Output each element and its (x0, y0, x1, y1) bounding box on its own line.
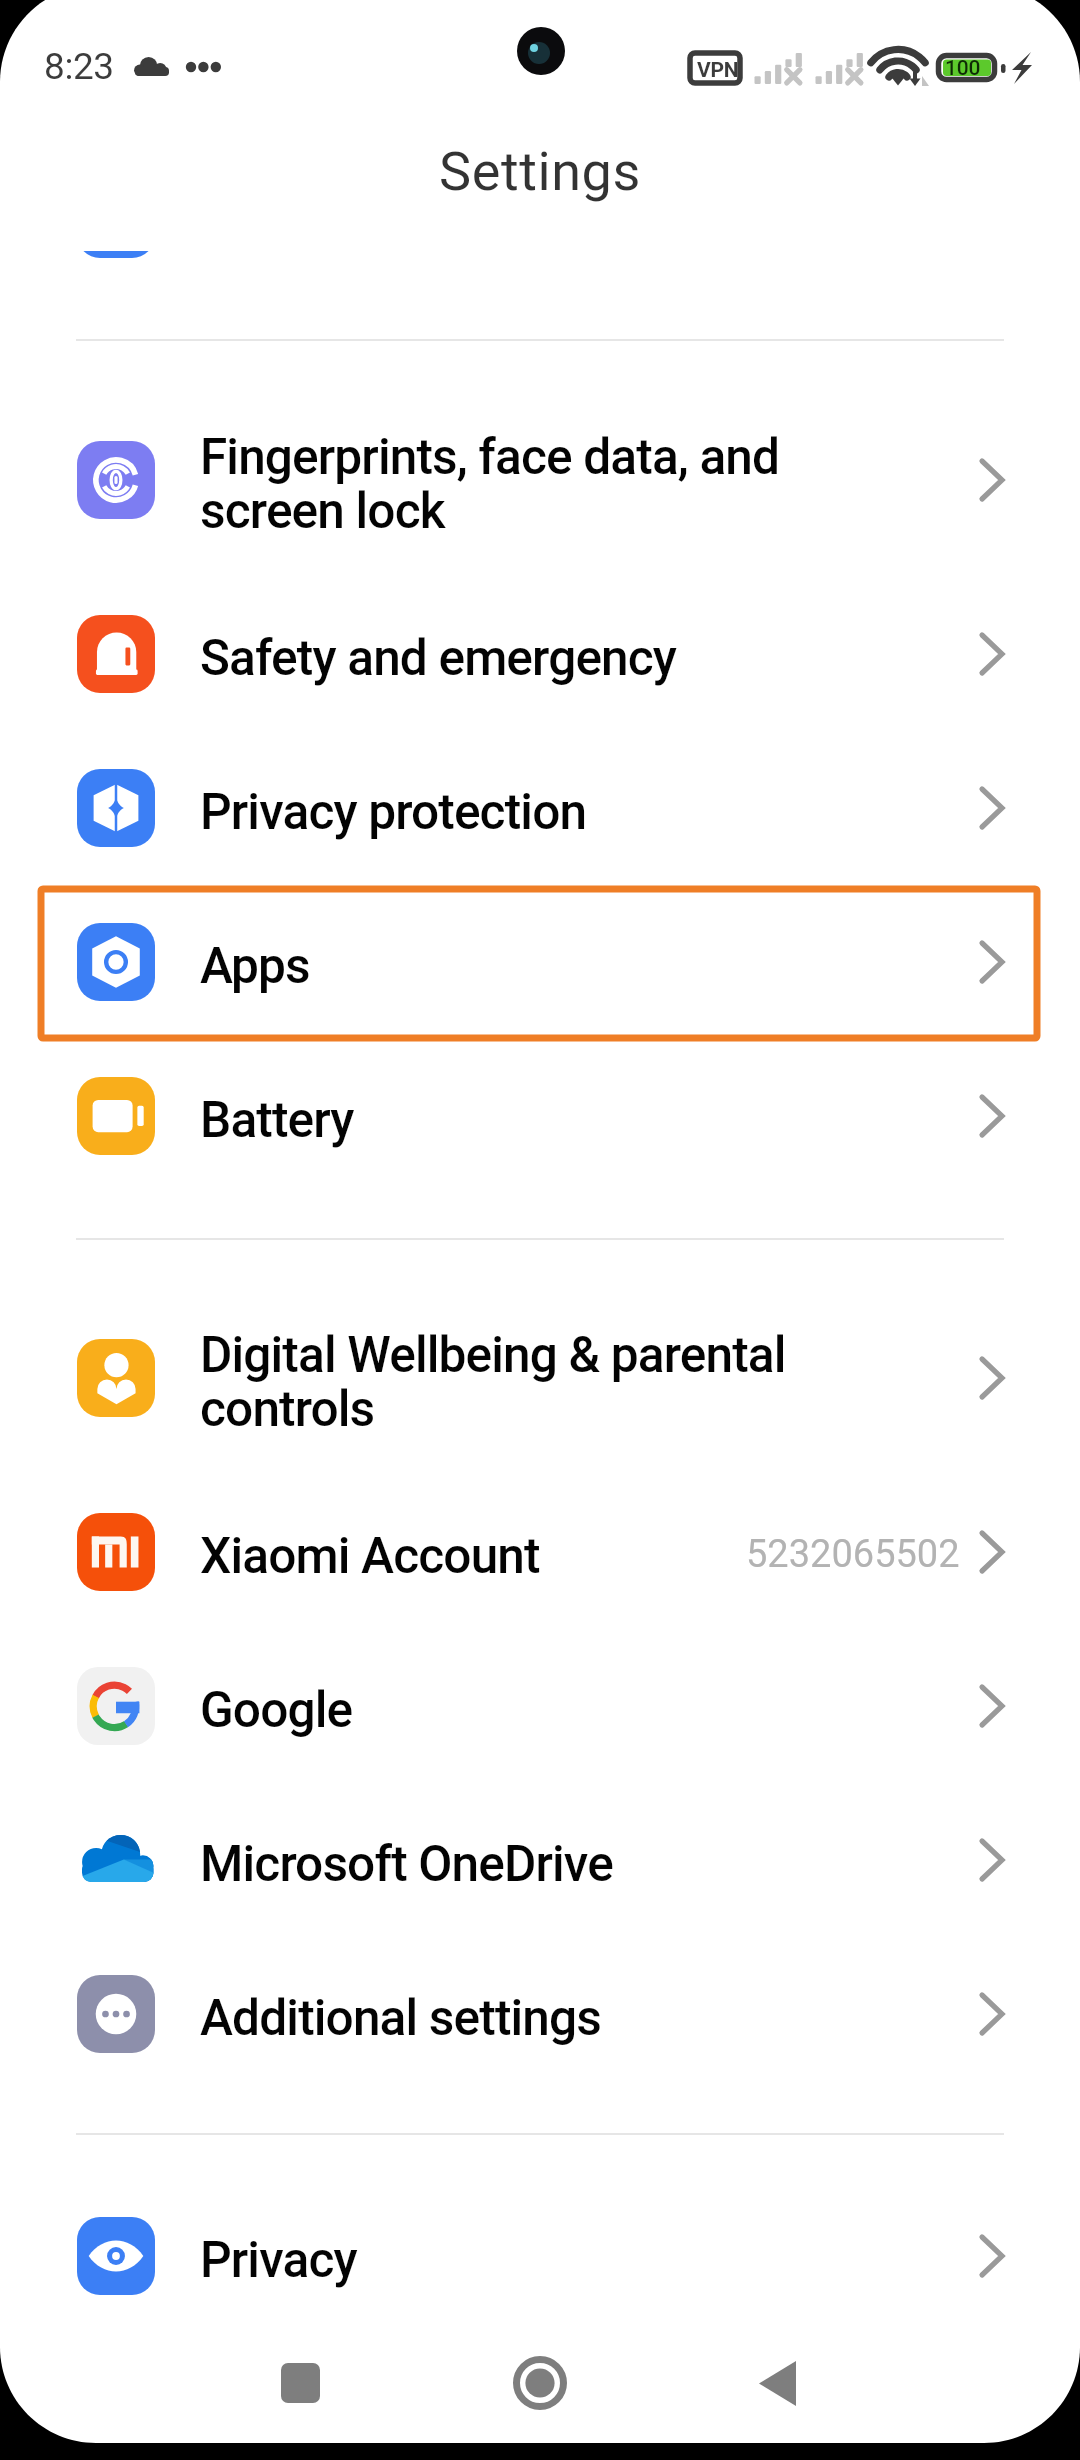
button[interactable]: Back (697, 2323, 857, 2443)
staticText: Google (200, 1681, 353, 1739)
staticText: VPN (697, 58, 739, 83)
button[interactable]: Xiaomi Account (0, 1475, 1080, 1629)
button[interactable]: Digital Wellbeing & parental controls (0, 1281, 1080, 1475)
button[interactable]: Battery (0, 1039, 1080, 1193)
button[interactable]: Additional settings (0, 1937, 1080, 2091)
staticText: Xiaomi Account (200, 1527, 540, 1585)
staticText: Digital Wellbeing & parental controls (200, 1326, 786, 1438)
button[interactable]: Google (0, 1629, 1080, 1783)
staticText: Apps (200, 937, 310, 995)
staticText: Microsoft OneDrive (200, 1835, 613, 1893)
staticText: Additional settings (200, 1989, 601, 2047)
staticText: 8:23 (44, 45, 114, 88)
button[interactable]: Microsoft OneDrive (0, 1783, 1080, 1937)
button[interactable]: Recent apps (220, 2323, 380, 2443)
staticText: 100 (945, 56, 981, 81)
staticText: Privacy (200, 2231, 357, 2289)
button[interactable]: Privacy (0, 2179, 1080, 2333)
button[interactable]: Safety and emergency (0, 577, 1080, 731)
staticText: Privacy protection (200, 783, 587, 841)
staticText: Fingerprints, face data, and screen lock (200, 428, 780, 540)
staticText: Battery (200, 1091, 354, 1149)
button[interactable]: Fingerprints, face data, and screen lock (0, 383, 1080, 577)
button[interactable]: Privacy protection (0, 731, 1080, 885)
staticText: 5232065502 (746, 1532, 960, 1577)
staticText: Safety and emergency (200, 629, 677, 687)
button[interactable]: Home (460, 2323, 620, 2443)
staticText: Settings (439, 140, 641, 203)
button[interactable]: Apps (0, 885, 1080, 1039)
